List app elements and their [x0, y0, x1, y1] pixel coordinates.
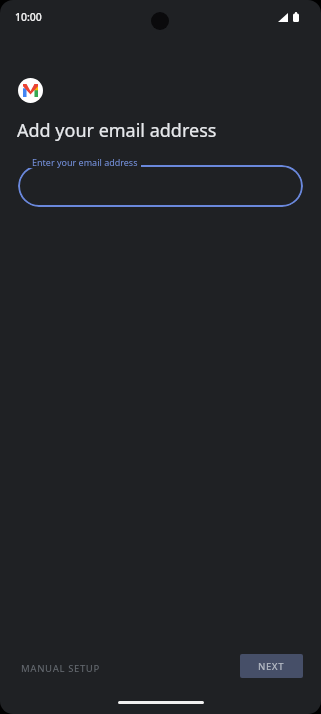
other: Battery [293, 12, 299, 22]
staticText: Enter your email address [32, 156, 138, 168]
other: Gmail [18, 78, 43, 103]
other: Mobile signal [278, 13, 288, 22]
button[interactable]: Enter your email address [18, 165, 303, 207]
staticText: 10:00 [15, 10, 42, 24]
staticText: MANUAL SETUP [21, 662, 100, 675]
staticText: Add your email address [17, 118, 217, 143]
button[interactable]: NEXT [240, 654, 303, 678]
staticText: NEXT [258, 660, 285, 673]
button[interactable]: MANUAL SETUP [11, 656, 110, 681]
